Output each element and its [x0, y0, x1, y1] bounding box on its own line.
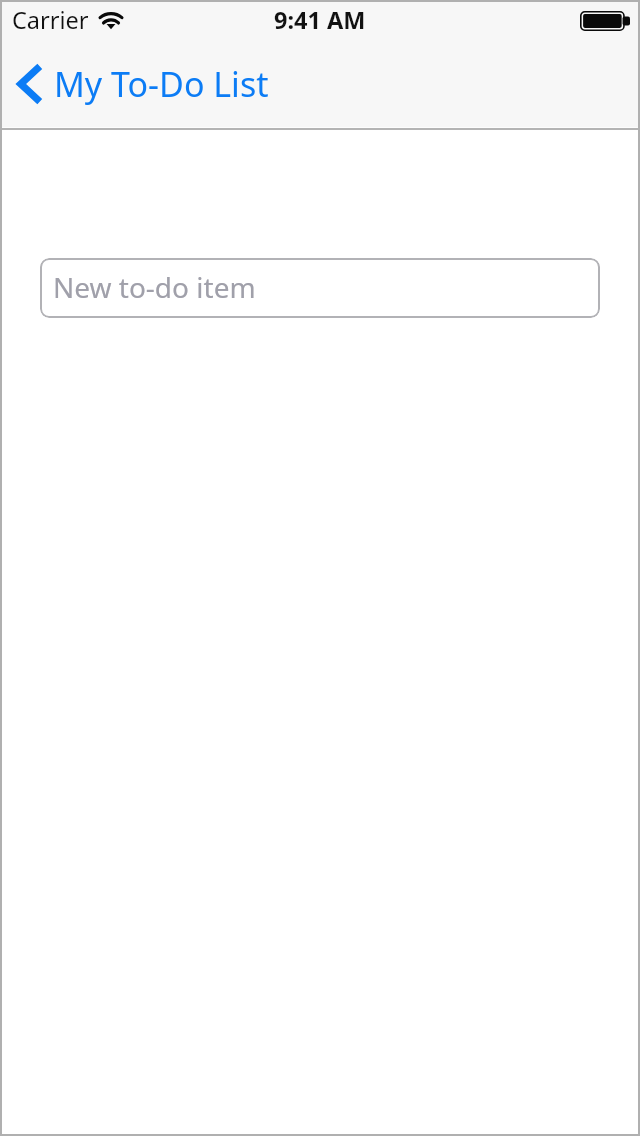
staticText: Carrier: [12, 4, 89, 36]
button[interactable]: New to-do item text field: [40, 258, 600, 318]
staticText: My To-Do List: [54, 61, 269, 107]
button[interactable]: Back: [2, 55, 279, 113]
staticText: New to-do item: [53, 268, 256, 306]
staticText: 9:41 AM: [274, 4, 366, 36]
other: Back: [17, 63, 43, 105]
